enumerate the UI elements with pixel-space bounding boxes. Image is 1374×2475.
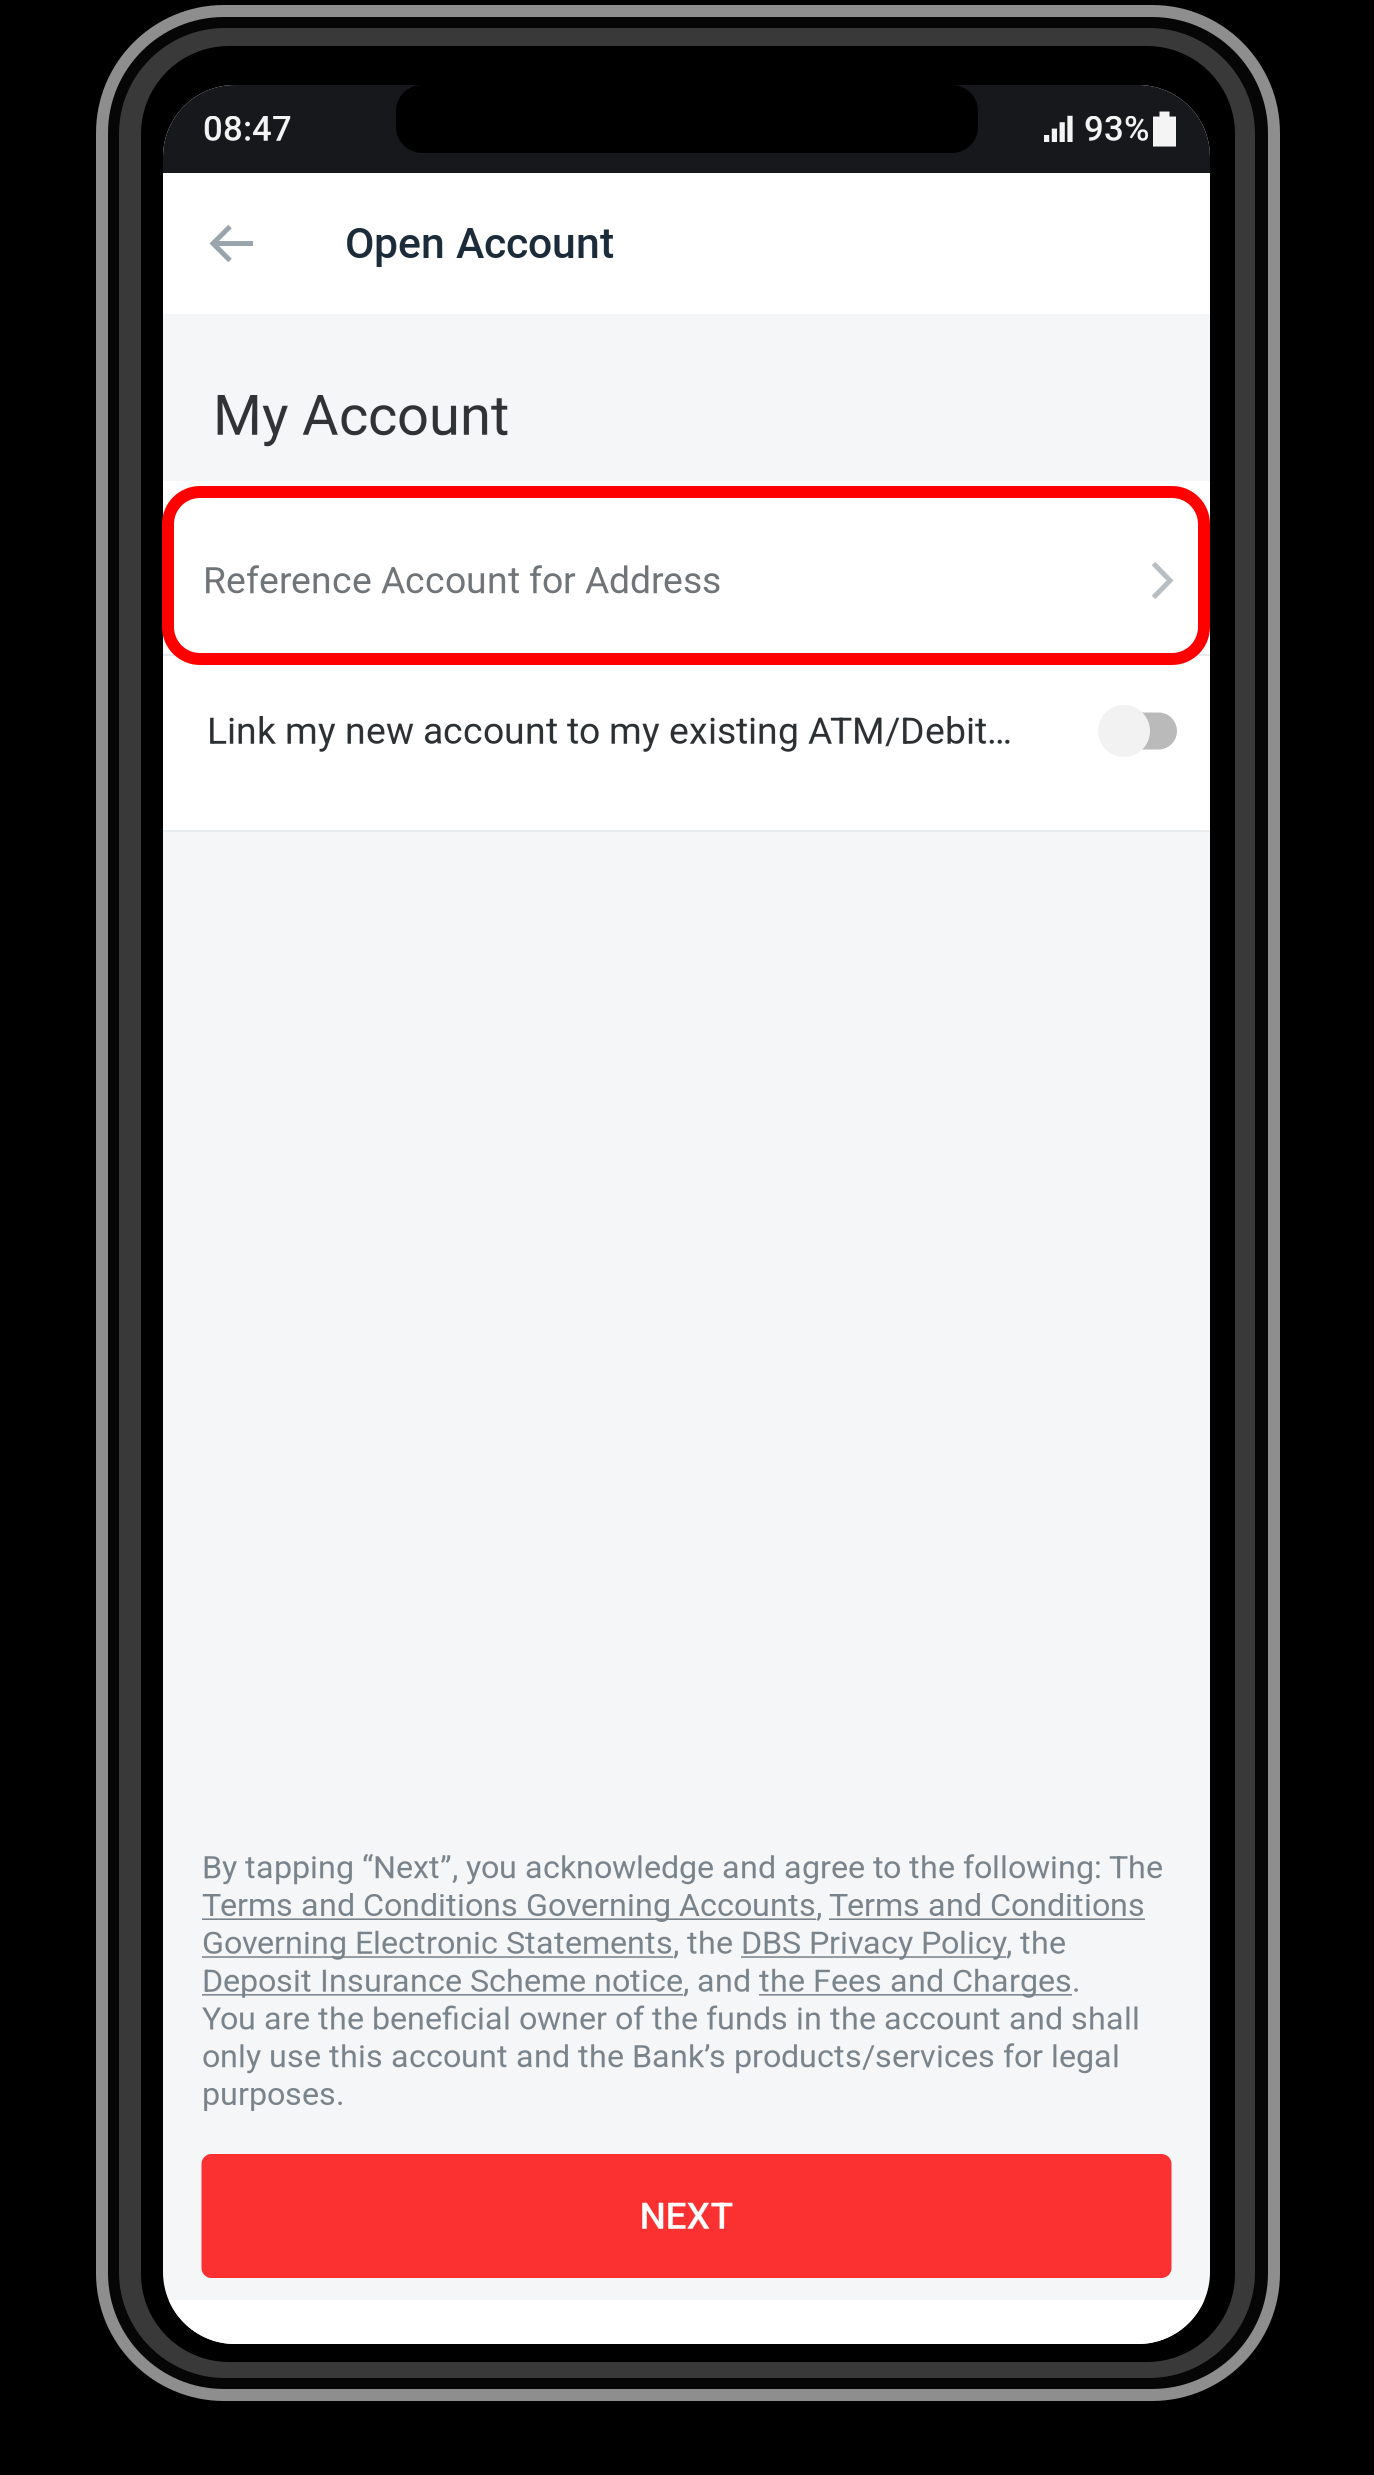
button[interactable]: NEXT [201, 2154, 1171, 2278]
staticText: Open Account [345, 218, 614, 268]
button[interactable]: Reference Account for Address [163, 481, 1210, 654]
button[interactable]: Link my new account to my existing ATM/D… [163, 656, 1210, 830]
staticText: My Account [213, 383, 509, 448]
button[interactable]: Back [189, 173, 277, 314]
staticText: By tapping “Next”, you acknowledge and a… [202, 1848, 1163, 2113]
staticText: Link my new account to my existing ATM/D… [207, 709, 1012, 753]
staticText: 93% [1084, 109, 1150, 149]
staticText: Reference Account for Address [203, 559, 721, 602]
staticText: NEXT [639, 2194, 733, 2238]
staticText: 08:47 [203, 109, 292, 149]
